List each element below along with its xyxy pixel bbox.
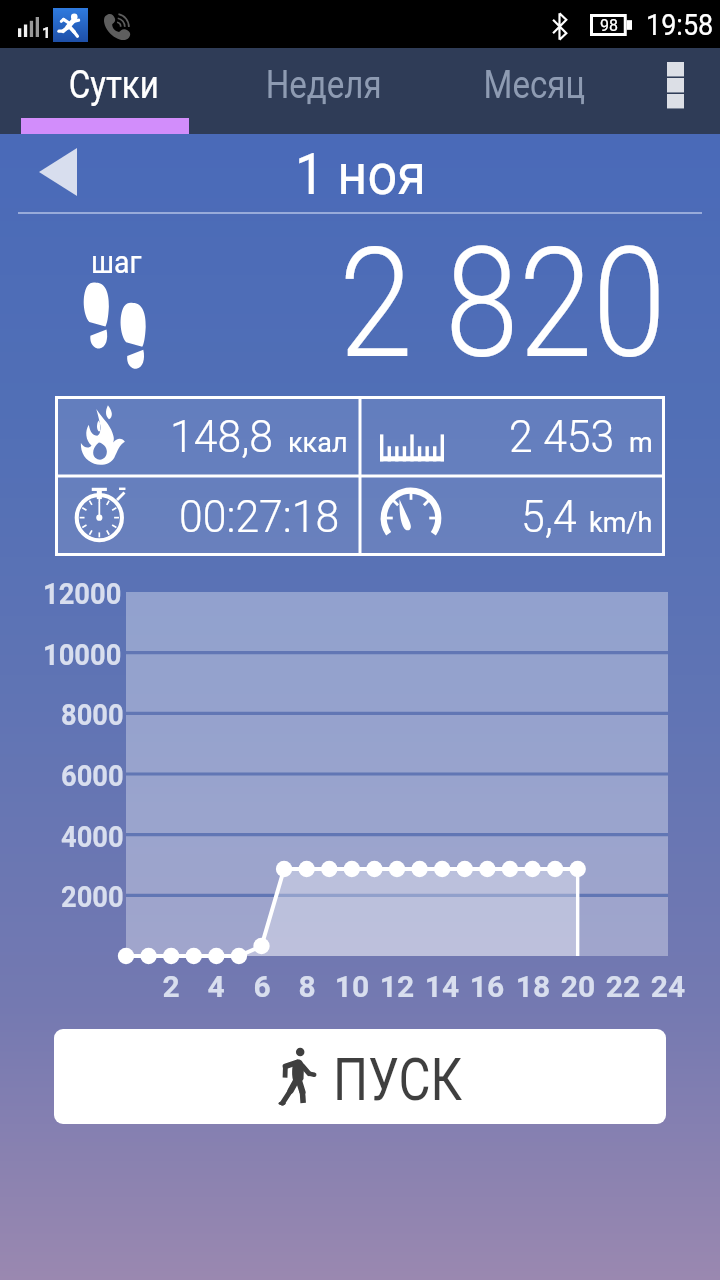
- button[interactable]: Previous day: [27, 142, 89, 202]
- button[interactable]: 5,4: [360, 476, 665, 556]
- staticText: 19:58: [646, 7, 713, 42]
- staticText: 4: [176, 969, 256, 1004]
- staticText: Месяц: [484, 63, 585, 108]
- staticText: m: [629, 427, 653, 459]
- staticText: 98: [600, 16, 618, 35]
- staticText: 2 820: [339, 215, 667, 393]
- staticText: 10: [312, 969, 392, 1004]
- staticText: 24: [628, 969, 708, 1004]
- staticText: 16: [447, 969, 527, 1004]
- staticText: 5,4: [521, 490, 577, 543]
- staticText: 14: [402, 969, 482, 1004]
- staticText: 8: [267, 969, 347, 1004]
- staticText: 2000: [61, 879, 124, 914]
- staticText: 1: [42, 24, 51, 42]
- button[interactable]: 2 453: [360, 396, 665, 476]
- button[interactable]: 148,8: [55, 396, 360, 476]
- staticText: 1 ноя: [295, 140, 426, 208]
- staticText: Неделя: [266, 63, 382, 108]
- staticText: 18: [493, 969, 573, 1004]
- staticText: 148,8: [170, 410, 273, 463]
- button[interactable]: Неделя: [210, 48, 420, 118]
- button[interactable]: 00:27:18: [55, 476, 360, 556]
- staticText: ПУСК: [333, 1044, 463, 1114]
- staticText: km/h: [589, 507, 653, 539]
- staticText: 8000: [61, 697, 124, 732]
- staticText: 00:27:18: [179, 490, 339, 543]
- staticText: 12: [357, 969, 437, 1004]
- button[interactable]: Месяц: [420, 48, 630, 118]
- staticText: 2 453: [509, 410, 614, 463]
- staticText: шаг: [91, 244, 142, 280]
- button[interactable]: More options: [636, 48, 720, 134]
- staticText: 10000: [43, 637, 122, 672]
- staticText: 6: [222, 969, 302, 1004]
- staticText: 6000: [61, 758, 124, 793]
- staticText: 2: [131, 969, 211, 1004]
- staticText: ккал: [288, 427, 348, 459]
- staticText: Сутки: [69, 63, 159, 108]
- staticText: 20: [538, 969, 618, 1004]
- staticText: 4000: [61, 819, 124, 854]
- button[interactable]: ПУСК: [54, 1029, 666, 1124]
- staticText: 12000: [43, 576, 122, 611]
- button[interactable]: Сутки: [0, 48, 210, 118]
- staticText: 22: [583, 969, 663, 1004]
